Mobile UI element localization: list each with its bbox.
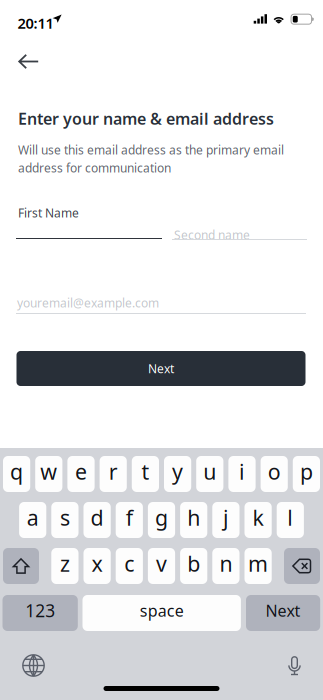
staticText: v [156, 549, 167, 578]
button[interactable]: Delete [284, 548, 320, 584]
staticText: space [140, 600, 184, 621]
staticText: r [109, 457, 118, 486]
button[interactable]: f [116, 502, 143, 538]
staticText: g [155, 503, 168, 532]
button[interactable]: a [19, 502, 46, 538]
button[interactable]: space [82, 595, 241, 631]
button[interactable]: d [83, 502, 111, 538]
button[interactable]: Next [16, 351, 305, 386]
staticText: p [300, 457, 313, 486]
button[interactable]: e [67, 456, 95, 492]
button[interactable]: 123 [2, 595, 78, 631]
staticText: a [27, 503, 39, 532]
button[interactable]: Next keyboard [15, 647, 52, 684]
staticText: Second name [174, 227, 250, 243]
button[interactable]: Back [0, 41, 57, 82]
staticText: n [219, 549, 232, 578]
staticText: w [40, 457, 57, 486]
staticText: Enter your name & email address [18, 108, 274, 129]
button[interactable]: l [277, 502, 304, 538]
button[interactable]: c [116, 548, 143, 584]
button[interactable]: Dictate [279, 648, 309, 685]
button[interactable]: o [261, 456, 288, 492]
button[interactable]: u [196, 456, 223, 492]
staticText: First Name [18, 205, 79, 221]
staticText: f [126, 503, 133, 532]
staticText: e [75, 457, 87, 486]
button[interactable]: t [132, 456, 159, 492]
button[interactable]: i [228, 456, 256, 492]
button[interactable]: g [148, 502, 175, 538]
staticText: x [92, 549, 103, 578]
staticText: s [60, 503, 70, 532]
staticText: Next [148, 360, 174, 376]
staticText: q [10, 457, 23, 486]
staticText: 20:11 [17, 13, 53, 33]
button[interactable]: z [51, 548, 78, 584]
button[interactable]: r [100, 456, 127, 492]
staticText: d [91, 503, 104, 532]
staticText: j [223, 503, 229, 532]
button[interactable]: j [212, 502, 239, 538]
staticText: u [203, 457, 216, 486]
staticText: m [248, 549, 268, 578]
staticText: Next [266, 600, 301, 621]
button[interactable]: k [244, 502, 272, 538]
button[interactable]: n [212, 548, 239, 584]
staticText: 123 [25, 599, 55, 622]
staticText: b [187, 549, 200, 578]
button[interactable]: y [164, 456, 191, 492]
button[interactable]: Shift [3, 548, 39, 584]
button[interactable]: w [35, 456, 62, 492]
staticText: y [172, 457, 183, 486]
button[interactable]: h [180, 502, 207, 538]
staticText: k [253, 503, 264, 532]
staticText: t [141, 457, 149, 486]
staticText: c [124, 549, 134, 578]
staticText: youremail@example.com [17, 295, 159, 311]
button[interactable]: b [180, 548, 207, 584]
staticText: Will use this email address as the prima… [18, 142, 284, 176]
button[interactable]: p [293, 456, 320, 492]
staticText: o [268, 457, 281, 486]
button[interactable]: v [148, 548, 175, 584]
staticText: i [239, 457, 245, 486]
button[interactable]: s [51, 502, 78, 538]
button[interactable]: Next [246, 595, 320, 631]
staticText: z [60, 549, 70, 578]
button[interactable]: m [244, 548, 272, 584]
staticText: l [287, 503, 293, 532]
staticText: h [187, 503, 200, 532]
button[interactable]: x [83, 548, 111, 584]
button[interactable]: q [3, 456, 30, 492]
